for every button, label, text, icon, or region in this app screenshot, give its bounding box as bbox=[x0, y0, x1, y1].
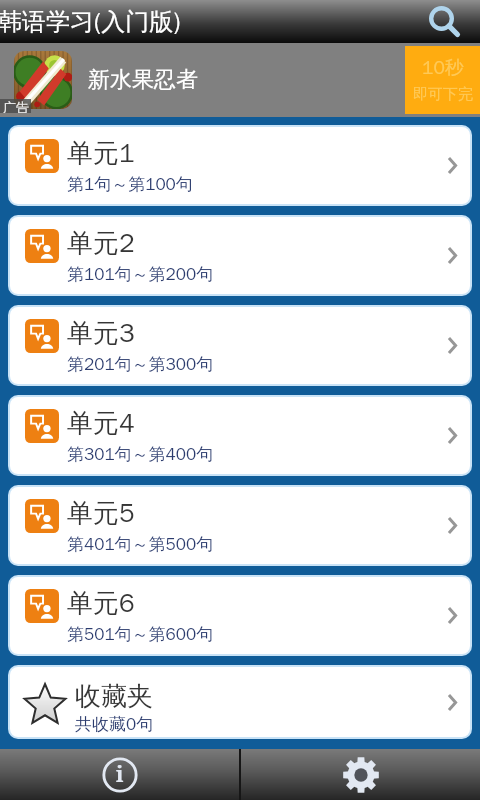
staticText: 单元3 bbox=[67, 317, 135, 350]
staticText: 韩语学习(入门版) bbox=[0, 7, 181, 37]
staticText: 第201句～第300句 bbox=[67, 354, 214, 375]
staticText: 第501句～第600句 bbox=[67, 624, 214, 645]
staticText: 第1句～第100句 bbox=[67, 174, 193, 195]
button[interactable]: Info bbox=[0, 749, 239, 800]
button[interactable]: 单元5 bbox=[10, 487, 470, 564]
staticText: 单元6 bbox=[67, 587, 135, 620]
staticText: i bbox=[116, 760, 124, 789]
button[interactable]: 10秒 bbox=[405, 46, 480, 114]
staticText: 单元1 bbox=[67, 137, 135, 170]
staticText: 即可下完 bbox=[413, 85, 473, 104]
staticText: 10秒 bbox=[422, 56, 464, 80]
button[interactable]: 单元3 bbox=[10, 307, 470, 384]
staticText: 单元4 bbox=[67, 407, 135, 440]
staticText: 单元5 bbox=[67, 497, 135, 530]
staticText: 收藏夹 bbox=[75, 680, 153, 713]
button[interactable]: 收藏夹 bbox=[10, 667, 470, 737]
staticText: 第401句～第500句 bbox=[67, 534, 214, 555]
staticText: 第301句～第400句 bbox=[67, 444, 214, 465]
button[interactable]: 单元4 bbox=[10, 397, 470, 474]
staticText: 新水果忍者 bbox=[88, 66, 198, 94]
button[interactable]: 单元2 bbox=[10, 217, 470, 294]
button[interactable]: 单元1 bbox=[10, 127, 470, 204]
button[interactable]: 单元6 bbox=[10, 577, 470, 654]
staticText: 共收藏0句 bbox=[75, 714, 154, 735]
staticText: 广告 bbox=[3, 99, 29, 113]
button[interactable]: Settings bbox=[241, 749, 480, 800]
button[interactable]: Search bbox=[424, 0, 480, 43]
staticText: 第101句～第200句 bbox=[67, 264, 214, 285]
staticText: 单元2 bbox=[67, 227, 135, 260]
